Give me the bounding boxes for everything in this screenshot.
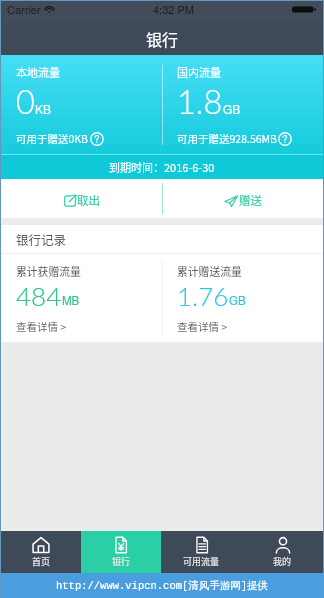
staticText: http://www.vipcn.com[清风手游网]提供 (56, 579, 269, 592)
staticText: 0 (16, 82, 35, 121)
button[interactable]: 首页 (1, 531, 81, 573)
staticText: 本地流量 (16, 64, 60, 80)
staticText: MB (62, 292, 80, 308)
button[interactable]: 帮助 (278, 132, 292, 146)
staticText: 到期时间：2016-6-30 (109, 159, 215, 175)
button[interactable]: 银行 (81, 531, 161, 573)
button[interactable]: 取出 (1, 179, 162, 218)
staticText: ? (94, 132, 100, 146)
staticText: KB (35, 100, 52, 117)
staticText: 484 (16, 280, 62, 311)
button[interactable]: 赠送 (162, 179, 323, 218)
staticText: 可用于赠送0KB (16, 131, 89, 146)
staticText: 累计获赠流量 (16, 263, 81, 279)
staticText: Carrier (7, 1, 41, 17)
staticText: 1.76 (177, 280, 229, 311)
button[interactable]: 帮助 (90, 132, 104, 146)
staticText: 国内流量 (177, 64, 221, 80)
staticText: 首页 (32, 555, 51, 568)
staticText: 银行 (112, 555, 131, 568)
staticText: 累计赠送流量 (177, 263, 242, 279)
staticText: 可用于赠送928.56MB (177, 131, 277, 146)
staticText: 查看详情 > (16, 319, 67, 334)
button[interactable]: 可用流量 (161, 531, 242, 573)
staticText: 可用流量 (183, 555, 220, 568)
staticText: 4:32 PM (153, 1, 194, 17)
staticText: 银行 (146, 27, 179, 50)
staticText: 赠送 (239, 192, 262, 209)
staticText: GB (223, 100, 241, 117)
staticText: 1.8 (177, 82, 223, 121)
button[interactable]: 累计获赠流量 (1, 254, 162, 342)
staticText: GB (229, 292, 246, 308)
staticText: ? (282, 132, 288, 146)
button[interactable]: 我的 (242, 531, 323, 573)
staticText: 取出 (77, 192, 100, 209)
button[interactable]: 累计赠送流量 (162, 254, 323, 342)
staticText: 查看详情 > (177, 319, 228, 334)
staticText: 银行记录 (16, 230, 67, 248)
staticText: 我的 (273, 555, 292, 568)
